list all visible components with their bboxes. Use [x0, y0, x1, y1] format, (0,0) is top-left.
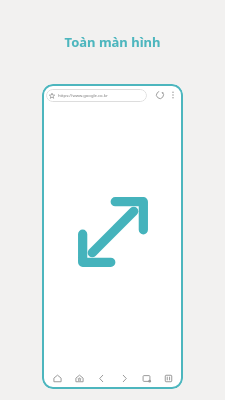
button[interactable]: More options: [167, 89, 179, 101]
button[interactable]: Bookmarks home: [69, 368, 89, 388]
button[interactable]: Home: [47, 368, 67, 388]
button[interactable]: Forward: [114, 368, 134, 388]
button[interactable]: Tabs: [136, 368, 156, 388]
button[interactable]: Full screen: [76, 195, 150, 269]
button[interactable]: https://www.google.co.kr: [46, 89, 147, 102]
staticText: Toàn màn hình: [0, 33, 225, 51]
button[interactable]: Back: [91, 368, 111, 388]
button[interactable]: Refresh: [153, 88, 167, 102]
button[interactable]: Menu: [158, 368, 178, 388]
staticText: https://www.google.co.kr: [58, 93, 108, 99]
